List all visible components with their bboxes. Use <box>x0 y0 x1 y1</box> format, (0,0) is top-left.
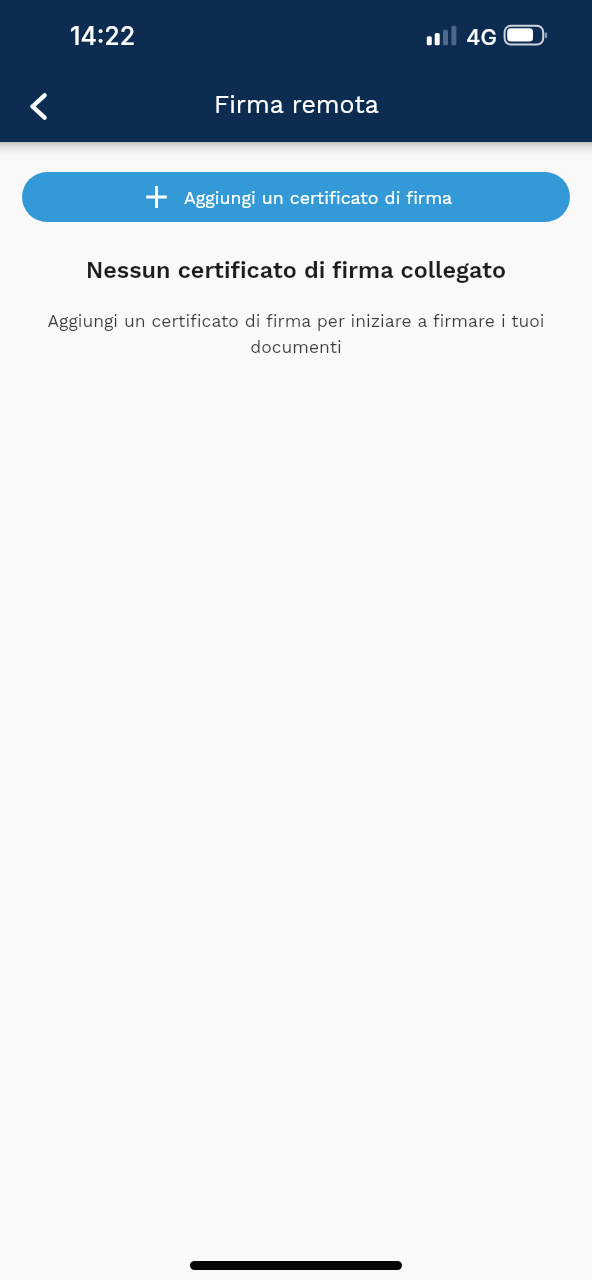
staticText: 14:22 <box>70 21 136 51</box>
button[interactable]: Back <box>0 71 64 142</box>
staticText: 4G <box>466 24 497 51</box>
staticText: Firma remota <box>214 90 379 119</box>
staticText: Nessun certificato di firma collegato <box>0 256 592 283</box>
button[interactable]: Aggiungi un certificato di firma <box>22 172 570 222</box>
staticText: Aggiungi un certificato di firma per ini… <box>46 311 546 357</box>
staticText: Aggiungi un certificato di firma <box>184 187 453 208</box>
